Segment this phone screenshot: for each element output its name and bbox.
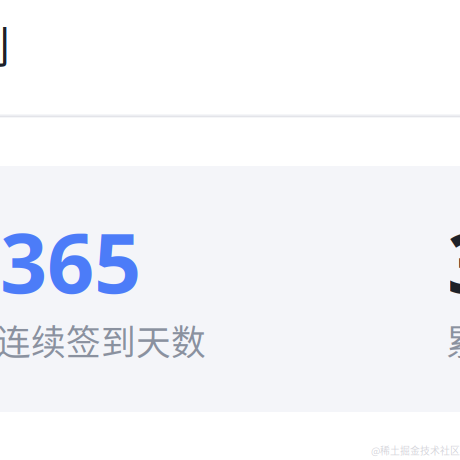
- button[interactable]: 365: [447, 205, 460, 360]
- staticText: 累计签到天数: [446, 315, 460, 365]
- staticText: 连续签到天数: [0, 315, 206, 365]
- staticText: 365: [447, 205, 460, 318]
- button[interactable]: 365: [0, 205, 210, 360]
- staticText: 365: [0, 205, 141, 318]
- staticText: 到: [0, 12, 10, 78]
- staticText: @稀土掘金技术社区: [371, 443, 460, 457]
